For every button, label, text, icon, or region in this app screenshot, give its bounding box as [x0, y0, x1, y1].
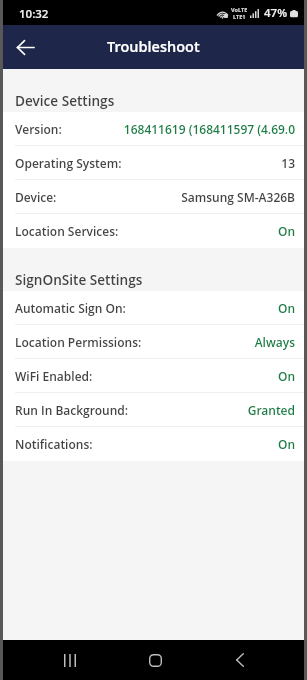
staticText: 47%: [264, 5, 288, 21]
staticText: Operating System:: [15, 155, 122, 171]
staticText: Location Permissions:: [15, 334, 142, 350]
staticText: Run In Background:: [15, 402, 129, 418]
staticText: VoLTE: [231, 6, 248, 13]
staticText: Location Services:: [15, 223, 119, 239]
button[interactable]: Location Permissions:: [3, 325, 304, 359]
staticText: On: [99, 436, 295, 452]
staticText: WiFi Enabled:: [15, 368, 93, 384]
staticText: Always: [148, 334, 295, 350]
staticText: 13: [128, 155, 295, 171]
button[interactable]: Automatic Sign On:: [3, 291, 304, 325]
staticText: SignOnSite Settings: [15, 270, 143, 289]
staticText: On: [132, 300, 295, 316]
button[interactable]: Device:: [3, 180, 304, 214]
button[interactable]: Recent apps: [50, 640, 90, 680]
staticText: Device Settings: [15, 91, 115, 110]
staticText: Samsung SM-A326B: [63, 189, 295, 205]
staticText: Device:: [15, 189, 57, 205]
staticText: Troubleshoot: [107, 37, 200, 57]
button[interactable]: Home: [135, 640, 175, 680]
staticText: LTE1: [233, 13, 246, 20]
button[interactable]: Notifications:: [3, 427, 304, 461]
button[interactable]: WiFi Enabled:: [3, 359, 304, 393]
button[interactable]: Back: [3, 25, 47, 69]
staticText: On: [99, 368, 295, 384]
button[interactable]: Operating System:: [3, 146, 304, 180]
staticText: Version:: [15, 121, 62, 137]
button[interactable]: Version:: [3, 112, 304, 146]
staticText: Notifications:: [15, 436, 93, 452]
staticText: 10:32: [19, 6, 49, 22]
staticText: On: [125, 223, 295, 239]
button[interactable]: Location Services:: [3, 214, 304, 248]
staticText: Granted: [135, 402, 295, 418]
staticText: Automatic Sign On:: [15, 300, 126, 316]
button[interactable]: Run In Background:: [3, 393, 304, 427]
button[interactable]: Back: [220, 640, 260, 680]
staticText: 168411619 (168411597 (4.69.0: [68, 121, 295, 137]
